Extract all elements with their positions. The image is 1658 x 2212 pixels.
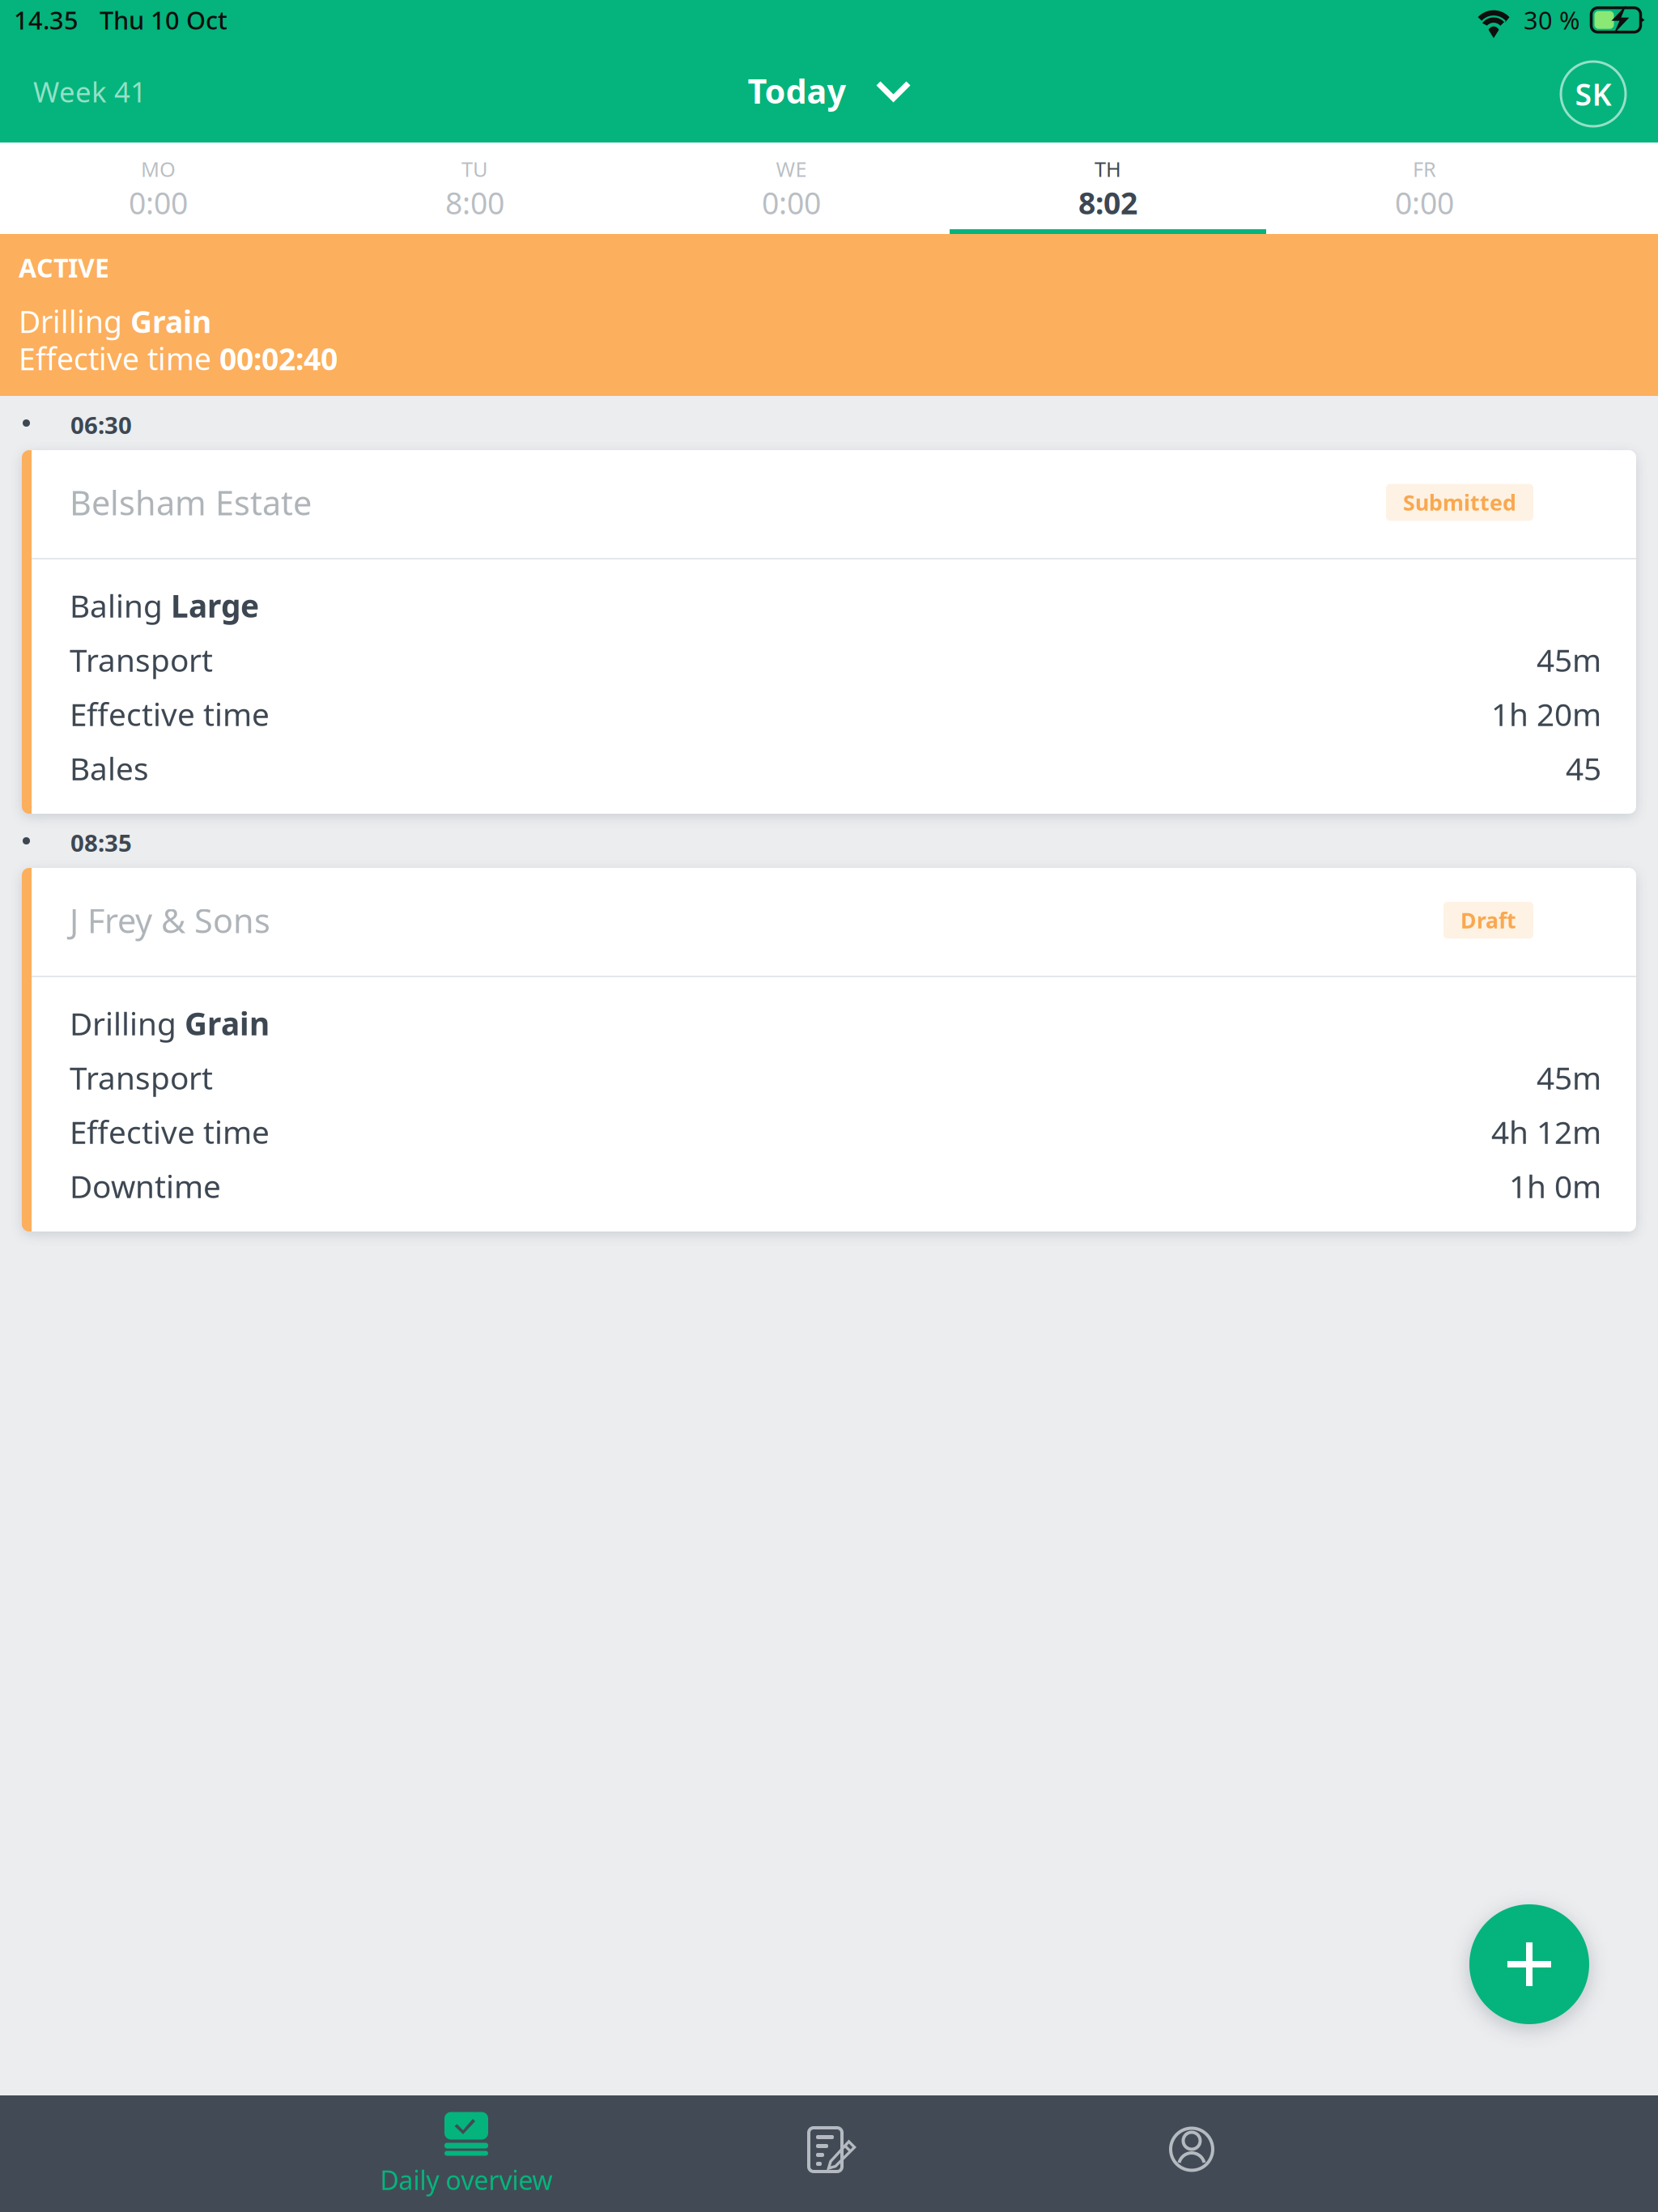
button[interactable]: Today xyxy=(731,51,927,137)
staticText: FR xyxy=(1413,155,1436,183)
staticText: 08:35 xyxy=(70,827,132,858)
staticText: 8:00 xyxy=(445,183,504,223)
staticText: Transport xyxy=(70,639,213,680)
button[interactable]: MO xyxy=(0,143,317,234)
staticText: Week 41 xyxy=(33,73,147,110)
button[interactable]: WE xyxy=(633,143,950,234)
button[interactable]: Week 41 xyxy=(0,56,147,132)
staticText: Effective time xyxy=(70,693,270,735)
button[interactable]: Account xyxy=(1561,52,1658,136)
staticText: Drilling xyxy=(70,1002,185,1044)
staticText: SK xyxy=(1575,74,1611,114)
staticText: Submitted xyxy=(1403,488,1516,517)
staticText: Downtime xyxy=(70,1165,221,1207)
staticText: 45m xyxy=(1537,639,1601,680)
staticText: 00:02:40 xyxy=(219,338,338,379)
button[interactable]: Timesheets xyxy=(648,2095,1010,2212)
staticText: MO xyxy=(141,155,176,183)
staticText: Draft xyxy=(1460,906,1516,935)
button[interactable]: TH xyxy=(950,143,1266,234)
staticText: 4h 12m xyxy=(1491,1111,1601,1152)
staticText: J Frey & Sons xyxy=(70,898,270,942)
staticText: 0:00 xyxy=(129,183,188,223)
staticText: Thu 10 Oct xyxy=(100,3,227,36)
button[interactable]: FR xyxy=(1266,143,1583,234)
staticText: Baling xyxy=(70,585,171,626)
staticText: 1h 0m xyxy=(1509,1165,1601,1207)
staticText: Drilling xyxy=(19,301,130,341)
staticText: Grain xyxy=(130,301,211,341)
staticText: 14.35 xyxy=(14,3,79,36)
staticText: Daily overview xyxy=(380,2163,553,2197)
staticText: 8:02 xyxy=(1078,183,1137,223)
staticText: 30 % xyxy=(1524,3,1579,36)
button[interactable]: Add entry xyxy=(1469,1904,1589,2024)
button[interactable]: Belsham Estate xyxy=(22,450,1636,814)
staticText: 06:30 xyxy=(70,409,132,440)
button[interactable]: Profile xyxy=(1010,2095,1373,2212)
staticText: Effective time xyxy=(19,338,219,379)
staticText: 1h 20m xyxy=(1491,693,1601,735)
staticText: 45m xyxy=(1537,1057,1601,1098)
staticText: TH xyxy=(1095,155,1121,183)
staticText: Effective time xyxy=(70,1111,270,1152)
staticText: Transport xyxy=(70,1057,213,1098)
staticText: ACTIVE xyxy=(19,250,109,285)
staticText: Belsham Estate xyxy=(70,480,312,525)
staticText: WE xyxy=(776,155,807,183)
button[interactable]: Daily overview xyxy=(285,2095,648,2212)
staticText: Large xyxy=(171,585,259,626)
staticText: Grain xyxy=(185,1002,270,1044)
button[interactable]: ACTIVE xyxy=(0,234,1658,396)
staticText: 45 xyxy=(1566,747,1601,789)
button[interactable]: TU xyxy=(317,143,633,234)
staticText: Bales xyxy=(70,747,149,789)
staticText: 0:00 xyxy=(762,183,821,223)
staticText: Today xyxy=(748,68,846,113)
staticText: 0:00 xyxy=(1395,183,1454,223)
button[interactable]: J Frey & Sons xyxy=(22,868,1636,1231)
staticText: TU xyxy=(461,155,488,183)
